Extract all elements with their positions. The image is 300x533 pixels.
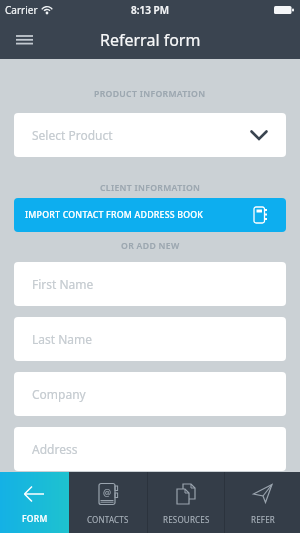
staticText: RESOURCES [163,514,210,525]
staticText: OR ADD NEW [121,240,180,252]
staticText: Referral form [100,29,201,51]
staticText: Last Name [32,331,93,347]
button[interactable] [10,26,38,54]
button[interactable]: First Name [14,262,286,306]
button[interactable]: Address [14,427,286,471]
button[interactable]: Company [14,372,286,416]
staticText: PRODUCT INFORMATION [94,88,206,100]
staticText: First Name [32,276,94,292]
staticText: REFER [251,514,275,525]
button[interactable]: RESOURCES [148,472,224,533]
staticText: CLIENT INFORMATION [100,182,201,194]
button[interactable]: Select Product [14,113,286,157]
staticText: @ [103,486,112,498]
button[interactable]: FORM [0,472,69,533]
staticText: Address [32,441,78,457]
staticText: FORM [22,513,48,525]
staticText: Carrier [5,3,38,17]
button[interactable]: Last Name [14,317,286,361]
button[interactable]: @ [69,472,147,533]
button[interactable]: IMPORT CONTACT FROM ADDRESS BOOK [14,198,286,232]
staticText: 8:13 PM [131,3,169,17]
staticText: IMPORT CONTACT FROM ADDRESS BOOK [25,209,204,221]
staticText: Company [32,386,86,402]
staticText: CONTACTS [87,514,129,525]
button[interactable]: REFER [225,472,300,533]
staticText: Select Product [32,127,113,143]
